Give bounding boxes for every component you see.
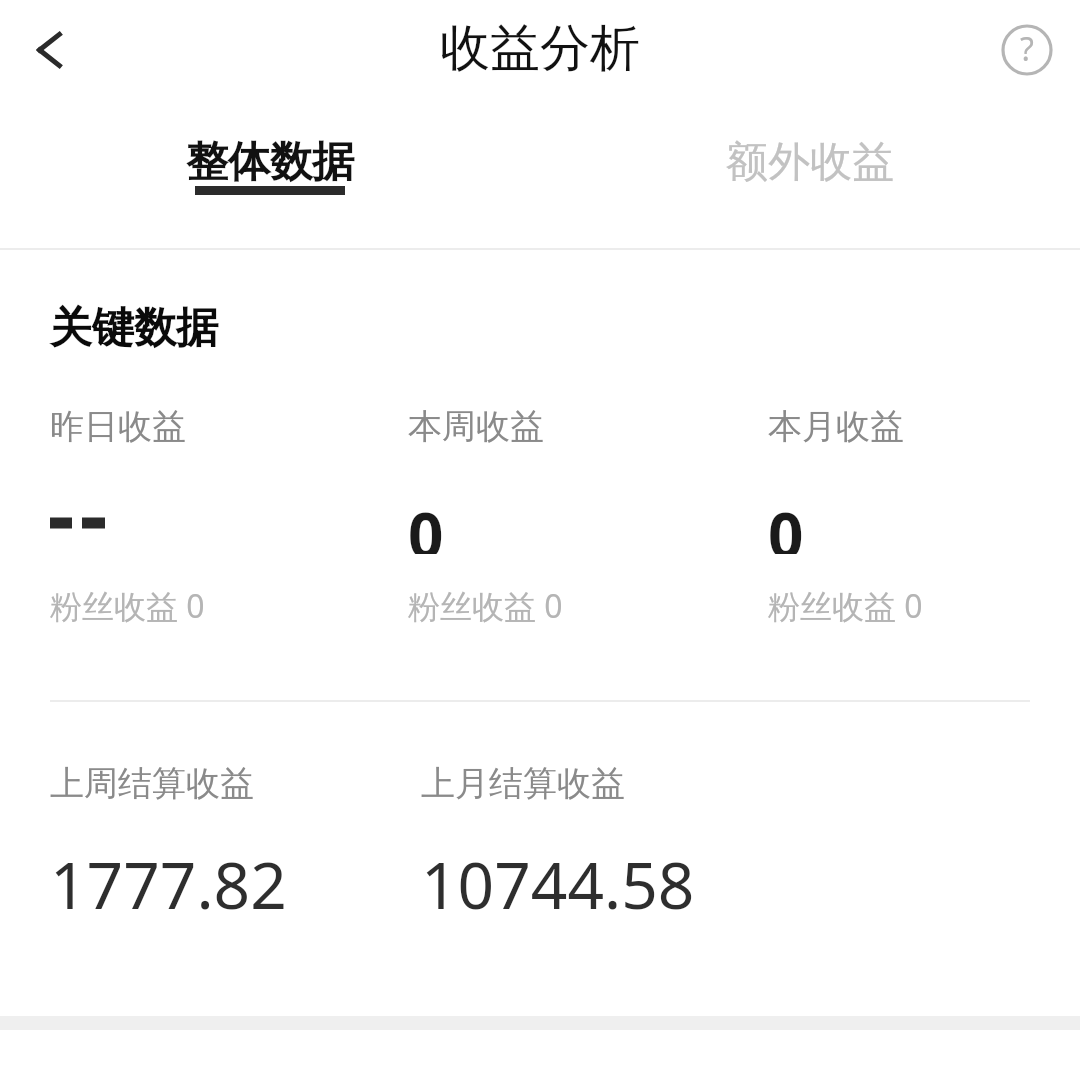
staticText: 粉丝收益 0	[408, 584, 563, 628]
staticText: 本月收益	[768, 405, 904, 448]
staticText: 收益分析	[440, 17, 640, 80]
staticText: ?	[1020, 27, 1034, 71]
staticText: 关键数据	[50, 302, 218, 355]
staticText: 0	[408, 492, 444, 554]
staticText: 10744.58	[421, 841, 695, 928]
button[interactable]: 整体数据	[0, 100, 540, 250]
staticText: 昨日收益	[50, 405, 186, 448]
staticText: 粉丝收益 0	[768, 584, 923, 628]
staticText: 粉丝收益 0	[50, 584, 205, 628]
staticText: 1777.82	[50, 841, 287, 928]
staticText: 上周结算收益	[50, 762, 254, 805]
staticText: 整体数据	[186, 136, 354, 189]
staticText: 上月结算收益	[421, 762, 625, 805]
button[interactable]: 额外收益	[540, 100, 1080, 250]
staticText: 额外收益	[726, 136, 894, 189]
button[interactable]: Back	[0, 0, 100, 100]
staticText: 本周收益	[408, 405, 544, 448]
button[interactable]: Help	[982, 5, 1072, 95]
staticText: 0	[768, 492, 804, 554]
